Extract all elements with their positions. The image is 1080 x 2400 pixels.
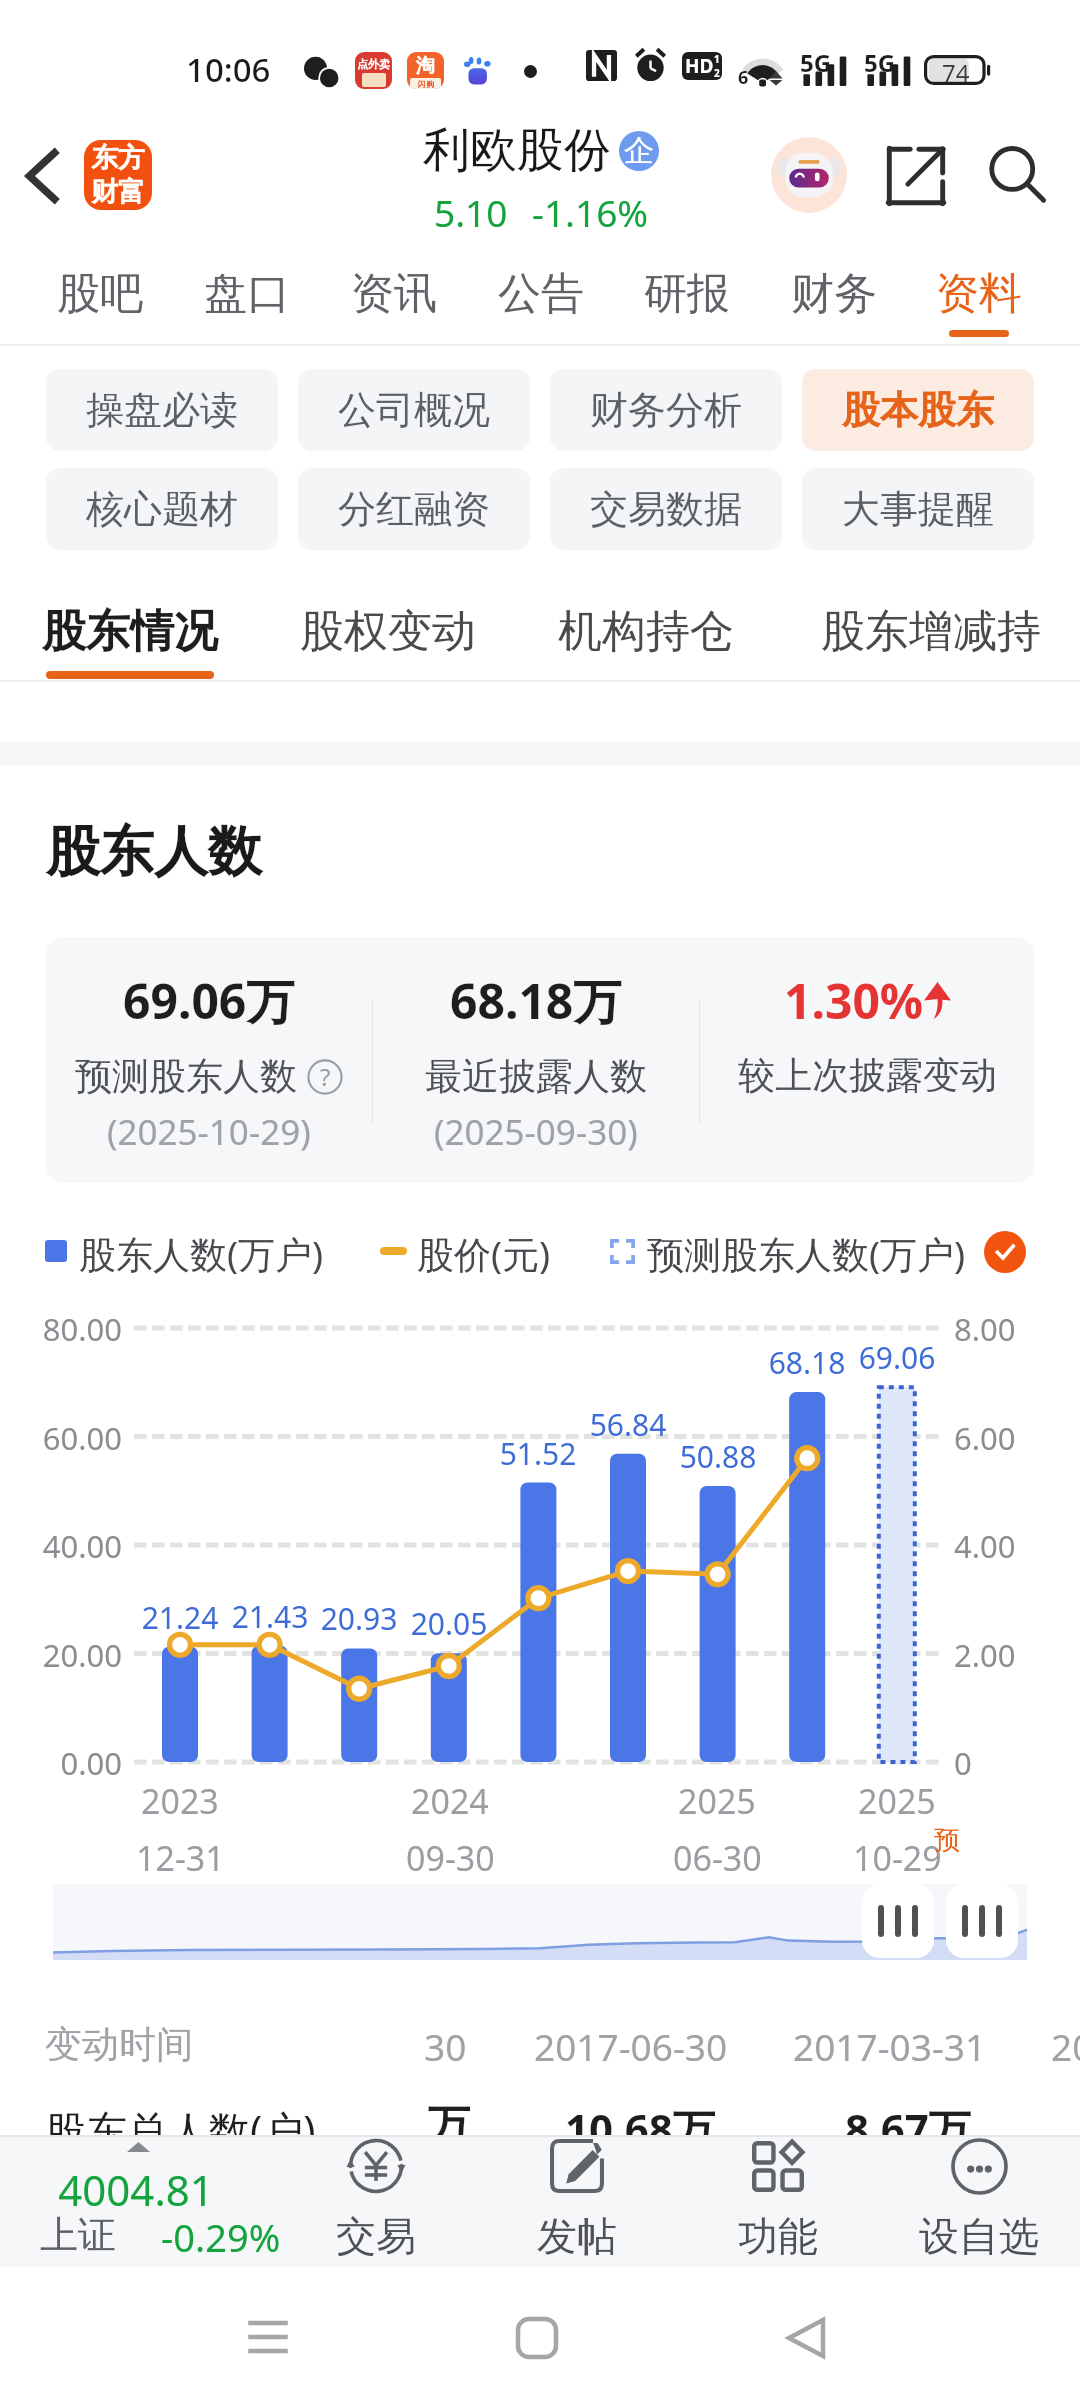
staticText: 股权变动 [300,604,476,659]
staticText: 56.84 [568,1404,688,1445]
staticText: 2017-06-30 [534,2021,728,2071]
staticText: 预测股东人数 [75,1053,297,1100]
staticText: 10.68万 [565,2100,715,2157]
staticText: 20.05 [389,1603,509,1644]
staticText: 设自选 [919,2211,1039,2261]
staticText: 公司概况 [338,386,490,434]
staticText: 财务分析 [590,386,742,434]
staticText: ? [320,1060,331,1093]
staticText: 交易 [336,2211,416,2261]
staticText: 股东人数(万户) [79,1228,324,1279]
button[interactable]: 财务 [772,240,896,346]
button[interactable]: 股本股东 [802,369,1034,451]
staticText: 8.00 [954,1308,1064,1350]
staticText: 20.93 [299,1598,419,1639]
button[interactable]: 分红融资 [298,468,530,550]
staticText: 50.88 [658,1436,778,1477]
staticText: 74 [942,56,970,88]
staticText: 万 [428,2100,470,2153]
staticText: 69.06万 [123,968,295,1034]
staticText: (2025-09-30) [434,1108,638,1156]
staticText: 公告 [498,267,584,321]
other: Home [512,2313,562,2363]
button[interactable]: 东方 [84,140,152,210]
staticText: 淘 [416,54,435,78]
staticText: 0.00 [2,1742,122,1784]
button[interactable]: AI assistant [771,137,847,213]
staticText: 盘口 [204,267,290,321]
staticText: 12-31 [136,1835,225,1881]
staticText: 1.30% [784,968,924,1033]
button[interactable]: Share [876,136,956,216]
button[interactable]: 股吧 [38,240,162,346]
staticText: 4004.81 [0,2161,272,2218]
staticText: 股吧 [57,267,143,321]
staticText: 2024 [411,1778,489,1824]
staticText: 预测股东人数(万户) [647,1228,966,1279]
staticText: 20 [1051,2021,1080,2071]
staticText: 51.52 [478,1433,598,1474]
other: Recents [242,2315,294,2359]
button[interactable]: Search [978,136,1058,216]
staticText: 核心题材 [86,485,238,533]
staticText: 2 [714,66,720,80]
staticText: 股东总人数(户) [45,2102,316,2158]
staticText: 30 [424,2021,467,2071]
staticText: 40.00 [2,1525,122,1567]
staticText: 研报 [644,267,730,321]
button[interactable]: 发帖 [487,2135,667,2267]
button[interactable]: 交易 [286,2135,466,2267]
button[interactable]: 研报 [625,240,749,346]
button[interactable]: Toggle forecast series [984,1231,1026,1273]
staticText: 2.00 [954,1634,1064,1676]
button[interactable]: 设自选 [889,2135,1069,2267]
staticText: 股东人数 [46,818,262,886]
staticText: 4.00 [954,1525,1064,1567]
staticText: 2017-03-31 [793,2021,987,2071]
button[interactable]: 交易数据 [550,468,782,550]
button[interactable]: 盘口 [185,240,309,346]
button[interactable]: 功能 [688,2135,868,2267]
staticText: 股价(元) [417,1228,551,1279]
button[interactable]: 财务分析 [550,369,782,451]
staticText: 财务 [791,267,877,321]
staticText: 大事提醒 [842,485,994,533]
staticText: -0.29% [161,2211,281,2263]
staticText: 东方 [91,141,145,175]
staticText: 较上次披露变动 [738,1052,997,1099]
button[interactable]: 股东增减持 [806,560,1056,682]
button[interactable]: Range handle [946,1884,1018,1958]
staticText: 2025 [858,1778,936,1824]
staticText: 股东情况 [42,604,218,659]
staticText: 上证 [40,2211,116,2259]
staticText: 资讯 [351,267,437,321]
button[interactable]: 操盘必读 [46,369,278,451]
button[interactable]: 公告 [479,240,603,346]
staticText: 2025 [678,1778,756,1824]
staticText: -1.16% [532,187,649,237]
staticText: 利欧股份 [423,121,611,180]
staticText: 20.00 [2,1634,122,1676]
button[interactable]: 资料 [917,240,1041,346]
staticText: 最近披露人数 [425,1053,647,1100]
button[interactable]: 公司概况 [298,369,530,451]
staticText: 企 [624,132,654,170]
staticText: 8.67万 [845,2100,971,2157]
button[interactable]: Back [4,124,82,228]
button[interactable]: 股权变动 [290,560,486,682]
staticText: 21.24 [120,1597,240,1638]
button[interactable]: 资讯 [332,240,456,346]
button[interactable]: 机构持仓 [548,560,744,682]
staticText: 闪购 [418,79,434,89]
staticText: 5G [864,46,896,79]
button[interactable]: 股东情况 [32,560,228,682]
button[interactable]: 大事提醒 [802,468,1034,550]
button[interactable]: Range handle [862,1884,934,1958]
staticText: 10:06 [186,47,271,92]
button[interactable]: 4004.81 [0,2135,286,2267]
staticText: 6 [738,65,749,90]
staticText: 变动时间 [45,2021,193,2068]
staticText: 点外卖 [357,57,390,71]
staticText: 操盘必读 [86,386,238,434]
button[interactable]: 核心题材 [46,468,278,550]
